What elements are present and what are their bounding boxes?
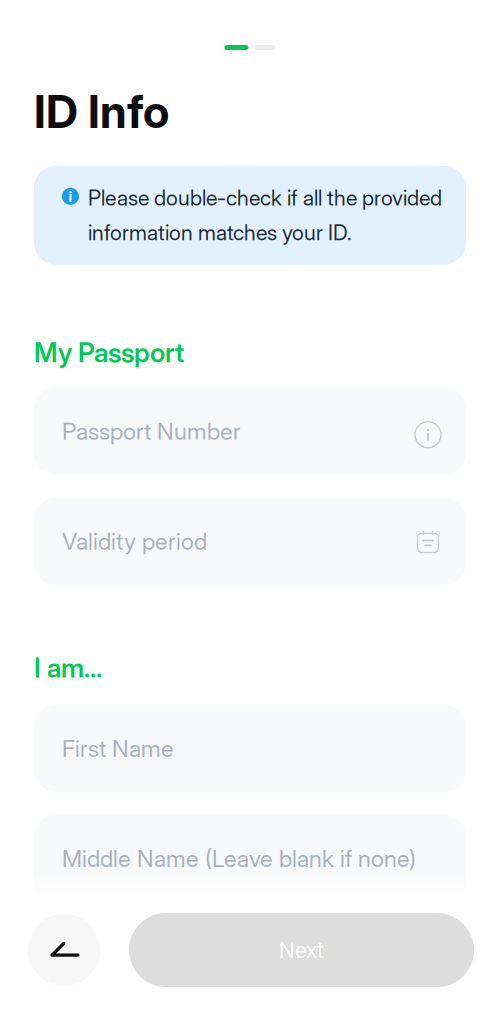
button[interactable]: Middle Name (Leave blank if none) xyxy=(34,815,466,902)
button[interactable]: Validity period xyxy=(34,498,466,585)
staticText: Validity period xyxy=(62,527,207,555)
staticText: Please double-check if all the provided … xyxy=(88,185,442,245)
button[interactable]: First Name xyxy=(34,705,466,792)
staticText: First Name xyxy=(62,734,174,763)
staticText: Middle Name (Leave blank if none) xyxy=(62,844,416,873)
staticText: i xyxy=(68,187,72,205)
staticText: Next xyxy=(279,937,324,963)
button[interactable]: Back xyxy=(28,914,100,986)
staticText: I am... xyxy=(34,652,102,684)
button[interactable]: Passport Number xyxy=(34,388,466,475)
staticText: Passport Number xyxy=(62,417,241,445)
staticText: ID Info xyxy=(34,84,169,139)
button[interactable]: Next xyxy=(129,913,474,987)
staticText: My Passport xyxy=(34,336,184,369)
